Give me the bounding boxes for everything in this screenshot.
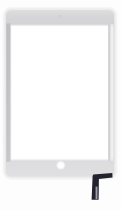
button[interactable]: Tablet digitizer touch screen product ph…: [0, 0, 121, 210]
